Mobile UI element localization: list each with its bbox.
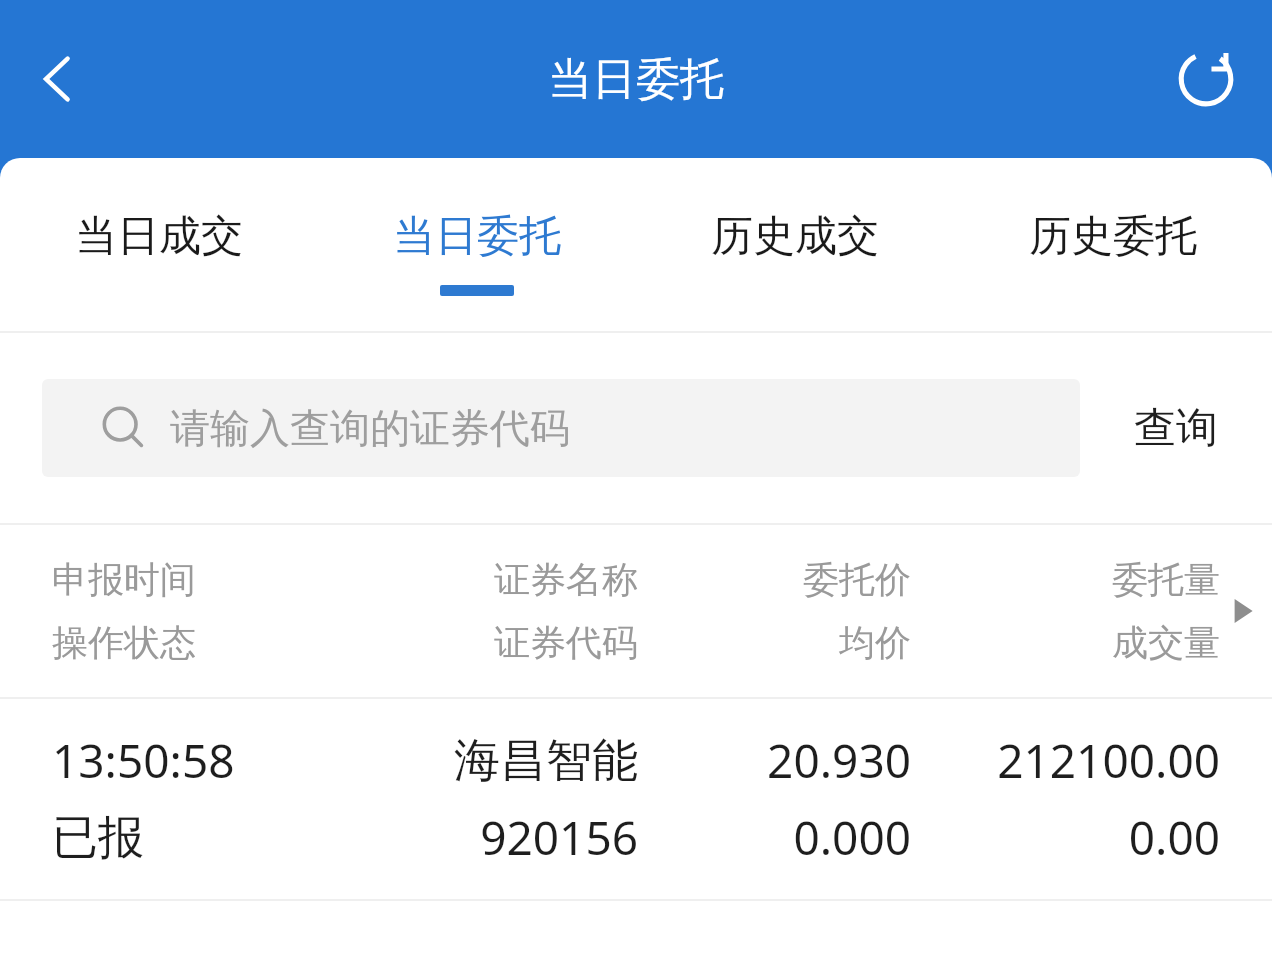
staticText: 当日委托	[393, 210, 561, 263]
staticText: 20.930	[662, 729, 911, 792]
staticText: 当日成交	[75, 210, 243, 263]
staticText: 委托量	[941, 557, 1220, 602]
staticText: 均价	[662, 620, 911, 665]
staticText: 当日委托	[548, 52, 724, 107]
staticText: 成交量	[941, 620, 1220, 665]
staticText: 请输入查询的证券代码	[170, 403, 570, 453]
staticText: 0.000	[662, 806, 911, 869]
button[interactable]: Refresh	[1156, 29, 1256, 129]
staticText: 申报时间	[52, 557, 345, 602]
staticText: 920156	[345, 806, 638, 869]
staticText: 证券代码	[345, 620, 638, 665]
staticText: 历史委托	[1029, 210, 1197, 263]
staticText: 13:50:58	[52, 729, 345, 792]
button[interactable]: 当日成交	[0, 158, 318, 331]
staticText: 历史成交	[711, 210, 879, 263]
staticText: 委托价	[662, 557, 911, 602]
button[interactable]: Back	[8, 29, 108, 129]
staticText: 证券名称	[345, 557, 638, 602]
staticText: 已报	[52, 809, 345, 867]
staticText: 操作状态	[52, 620, 345, 665]
button[interactable]: 查询	[1080, 379, 1272, 477]
button[interactable]: 历史委托	[954, 158, 1272, 331]
button[interactable]: 历史成交	[636, 158, 954, 331]
button[interactable]: 请输入查询的证券代码	[42, 379, 1080, 477]
staticText: 0.00	[941, 806, 1220, 869]
button[interactable]: Scroll right	[1220, 588, 1266, 634]
staticText: 海昌智能	[345, 732, 638, 790]
staticText: 查询	[1134, 402, 1218, 455]
button[interactable]: 13:50:58	[0, 699, 1272, 899]
staticText: 212100.00	[941, 729, 1220, 792]
button[interactable]: 当日委托	[318, 158, 636, 331]
